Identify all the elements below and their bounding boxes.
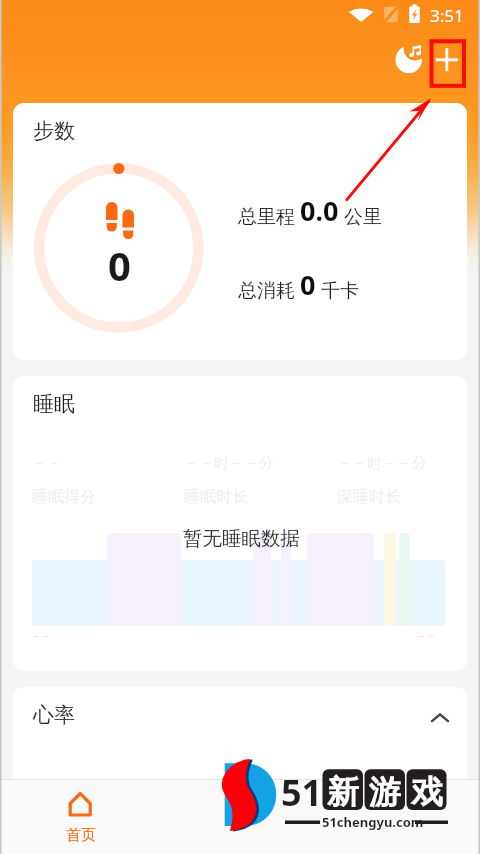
staticText: －－时－－分 — [337, 454, 427, 473]
staticText: 首页 — [66, 826, 96, 845]
staticText: 51chengyu.com — [322, 813, 424, 831]
staticText: 暂无睡眠数据 — [183, 526, 300, 551]
staticText: 公里 — [339, 203, 382, 229]
staticText: 睡眠时长 — [184, 487, 248, 507]
staticText: 总里程 — [238, 203, 300, 229]
staticText: 戏 — [411, 772, 443, 812]
staticText: 睡眠 — [33, 391, 75, 417]
staticText: 步数 — [33, 118, 75, 144]
button[interactable]: 睡眠 — [13, 376, 467, 671]
staticText: 0 — [108, 238, 131, 292]
button[interactable]: 步数 — [13, 103, 467, 360]
staticText: 心率 — [33, 702, 75, 728]
staticText: 总消耗 — [238, 277, 300, 303]
button[interactable]: 心率 — [13, 687, 467, 807]
staticText: －－ — [416, 629, 436, 642]
button[interactable]: Collapse — [418, 696, 462, 740]
staticText: 游 — [369, 772, 401, 812]
staticText: 千卡 — [316, 277, 359, 303]
staticText: 新 — [327, 772, 359, 812]
staticText: 0.0 — [300, 192, 339, 229]
staticText: 3:51 — [430, 4, 464, 27]
staticText: 51 — [281, 768, 323, 817]
staticText: －－ — [31, 629, 51, 642]
button[interactable]: 首页 — [0, 779, 160, 854]
staticText: 0 — [300, 266, 316, 303]
button[interactable]: Sleep music — [386, 36, 430, 80]
button[interactable]: Add device — [425, 36, 469, 80]
staticText: 深睡时长 — [337, 487, 401, 507]
staticText: －－时－－分 — [184, 454, 274, 473]
staticText: 睡眠得分 — [32, 487, 96, 507]
